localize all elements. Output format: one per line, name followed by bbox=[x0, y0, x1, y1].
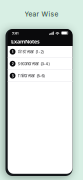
staticText: 9:41 bbox=[12, 30, 19, 36]
staticText: 2 bbox=[12, 61, 14, 66]
staticText: 3 bbox=[12, 73, 14, 78]
staticText: Year Wise bbox=[24, 10, 58, 18]
staticText: 1 bbox=[12, 49, 14, 54]
button[interactable]: 2 bbox=[8, 58, 72, 70]
staticText: ExamNotes bbox=[11, 38, 40, 45]
staticText: Second Year (3-4) bbox=[17, 61, 49, 66]
staticText: First Year (1-2) bbox=[17, 49, 43, 54]
staticText: Third Year (5-6) bbox=[17, 73, 44, 78]
button[interactable]: 3 bbox=[8, 70, 72, 82]
button[interactable]: 1 bbox=[8, 46, 72, 58]
